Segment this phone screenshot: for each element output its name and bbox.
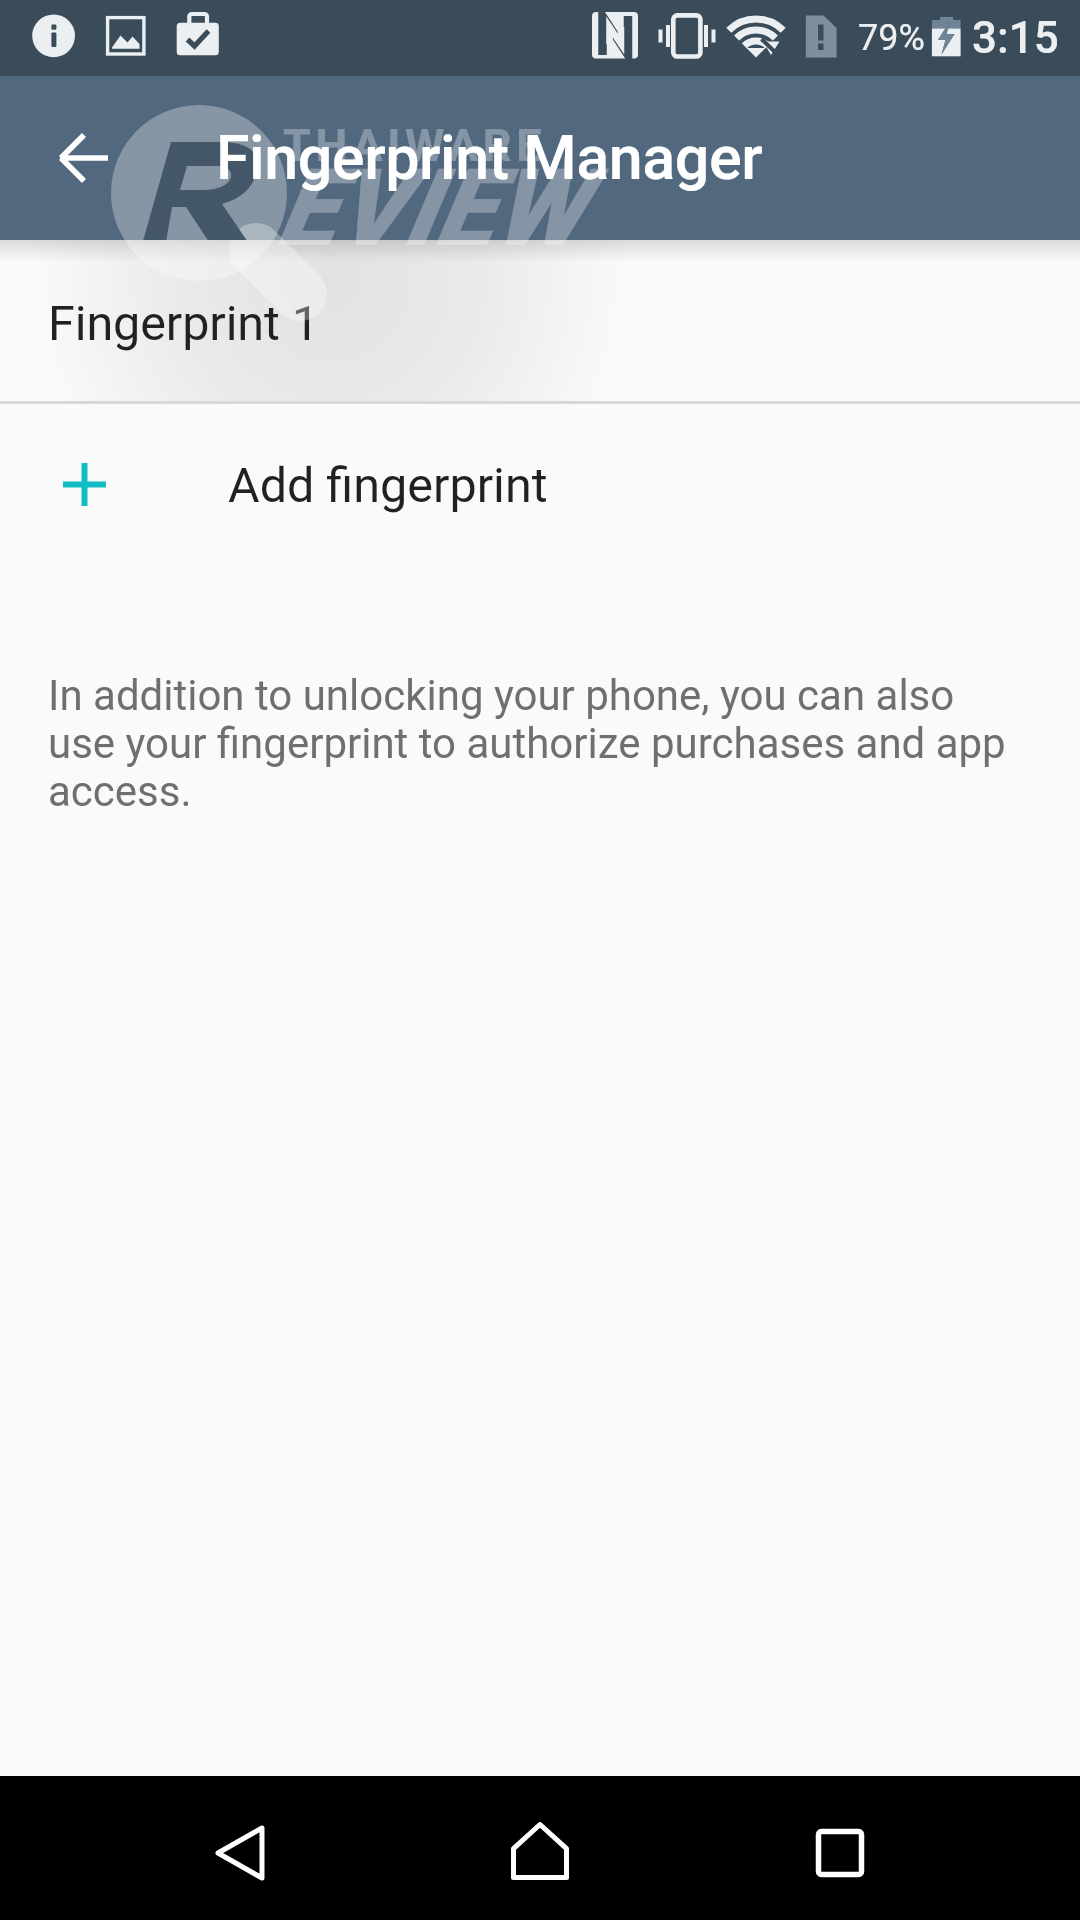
button[interactable]: Home bbox=[468, 1779, 612, 1920]
staticText: Add fingerprint bbox=[228, 457, 548, 514]
staticText: Fingerprint 1 bbox=[48, 295, 319, 352]
staticText: Fingerprint Manager bbox=[216, 122, 763, 193]
staticText: EVIEW bbox=[278, 146, 585, 271]
button[interactable]: Add fingerprint bbox=[0, 404, 1080, 564]
staticText: 3:15 bbox=[972, 12, 1059, 64]
staticText: In addition to unlocking your phone, you… bbox=[48, 671, 1022, 817]
button[interactable]: Navigate up bbox=[36, 110, 132, 206]
staticText: 79% bbox=[858, 17, 925, 59]
staticText: THAIWARE bbox=[283, 119, 547, 172]
button[interactable]: Back bbox=[168, 1781, 312, 1920]
button[interactable]: Recent apps bbox=[768, 1781, 912, 1920]
